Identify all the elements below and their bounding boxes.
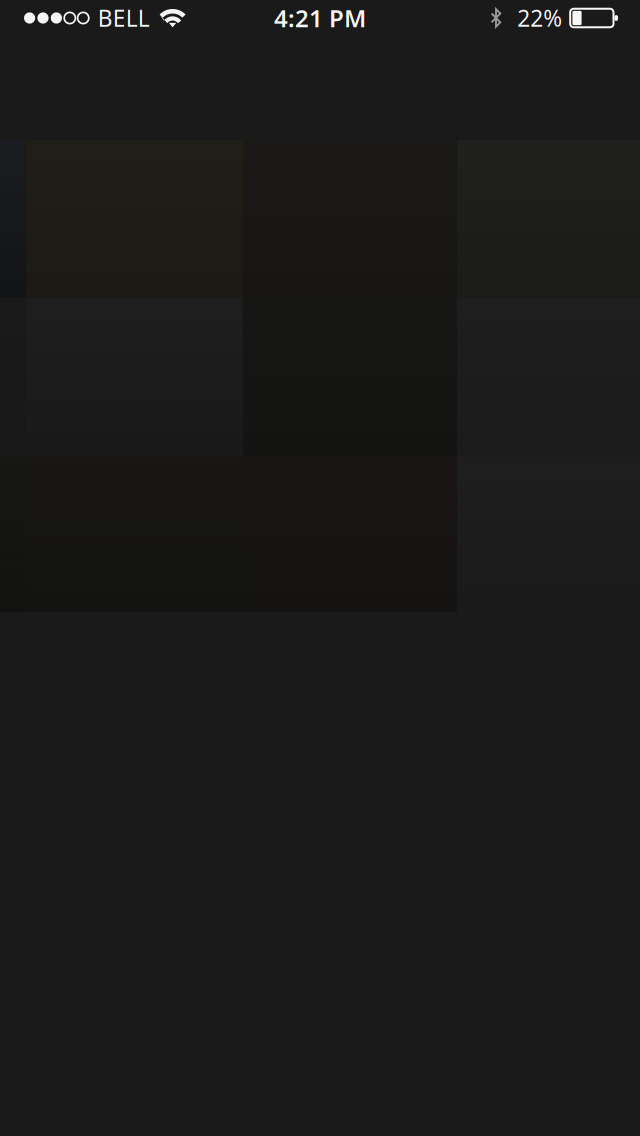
staticText: BELL: [98, 3, 150, 33]
staticText: 4:21 PM: [274, 2, 366, 34]
staticText: 22%: [517, 3, 562, 33]
